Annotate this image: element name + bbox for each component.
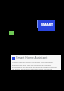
staticText: Smart Home Assistant xyxy=(16,56,48,60)
button[interactable]: Smart Home Assistant xyxy=(11,55,61,70)
staticText: SMART xyxy=(41,22,53,27)
button[interactable]: SMART xyxy=(37,20,55,31)
staticText: Lorem ipsum dolor sit amet consectetur a… xyxy=(12,61,60,70)
